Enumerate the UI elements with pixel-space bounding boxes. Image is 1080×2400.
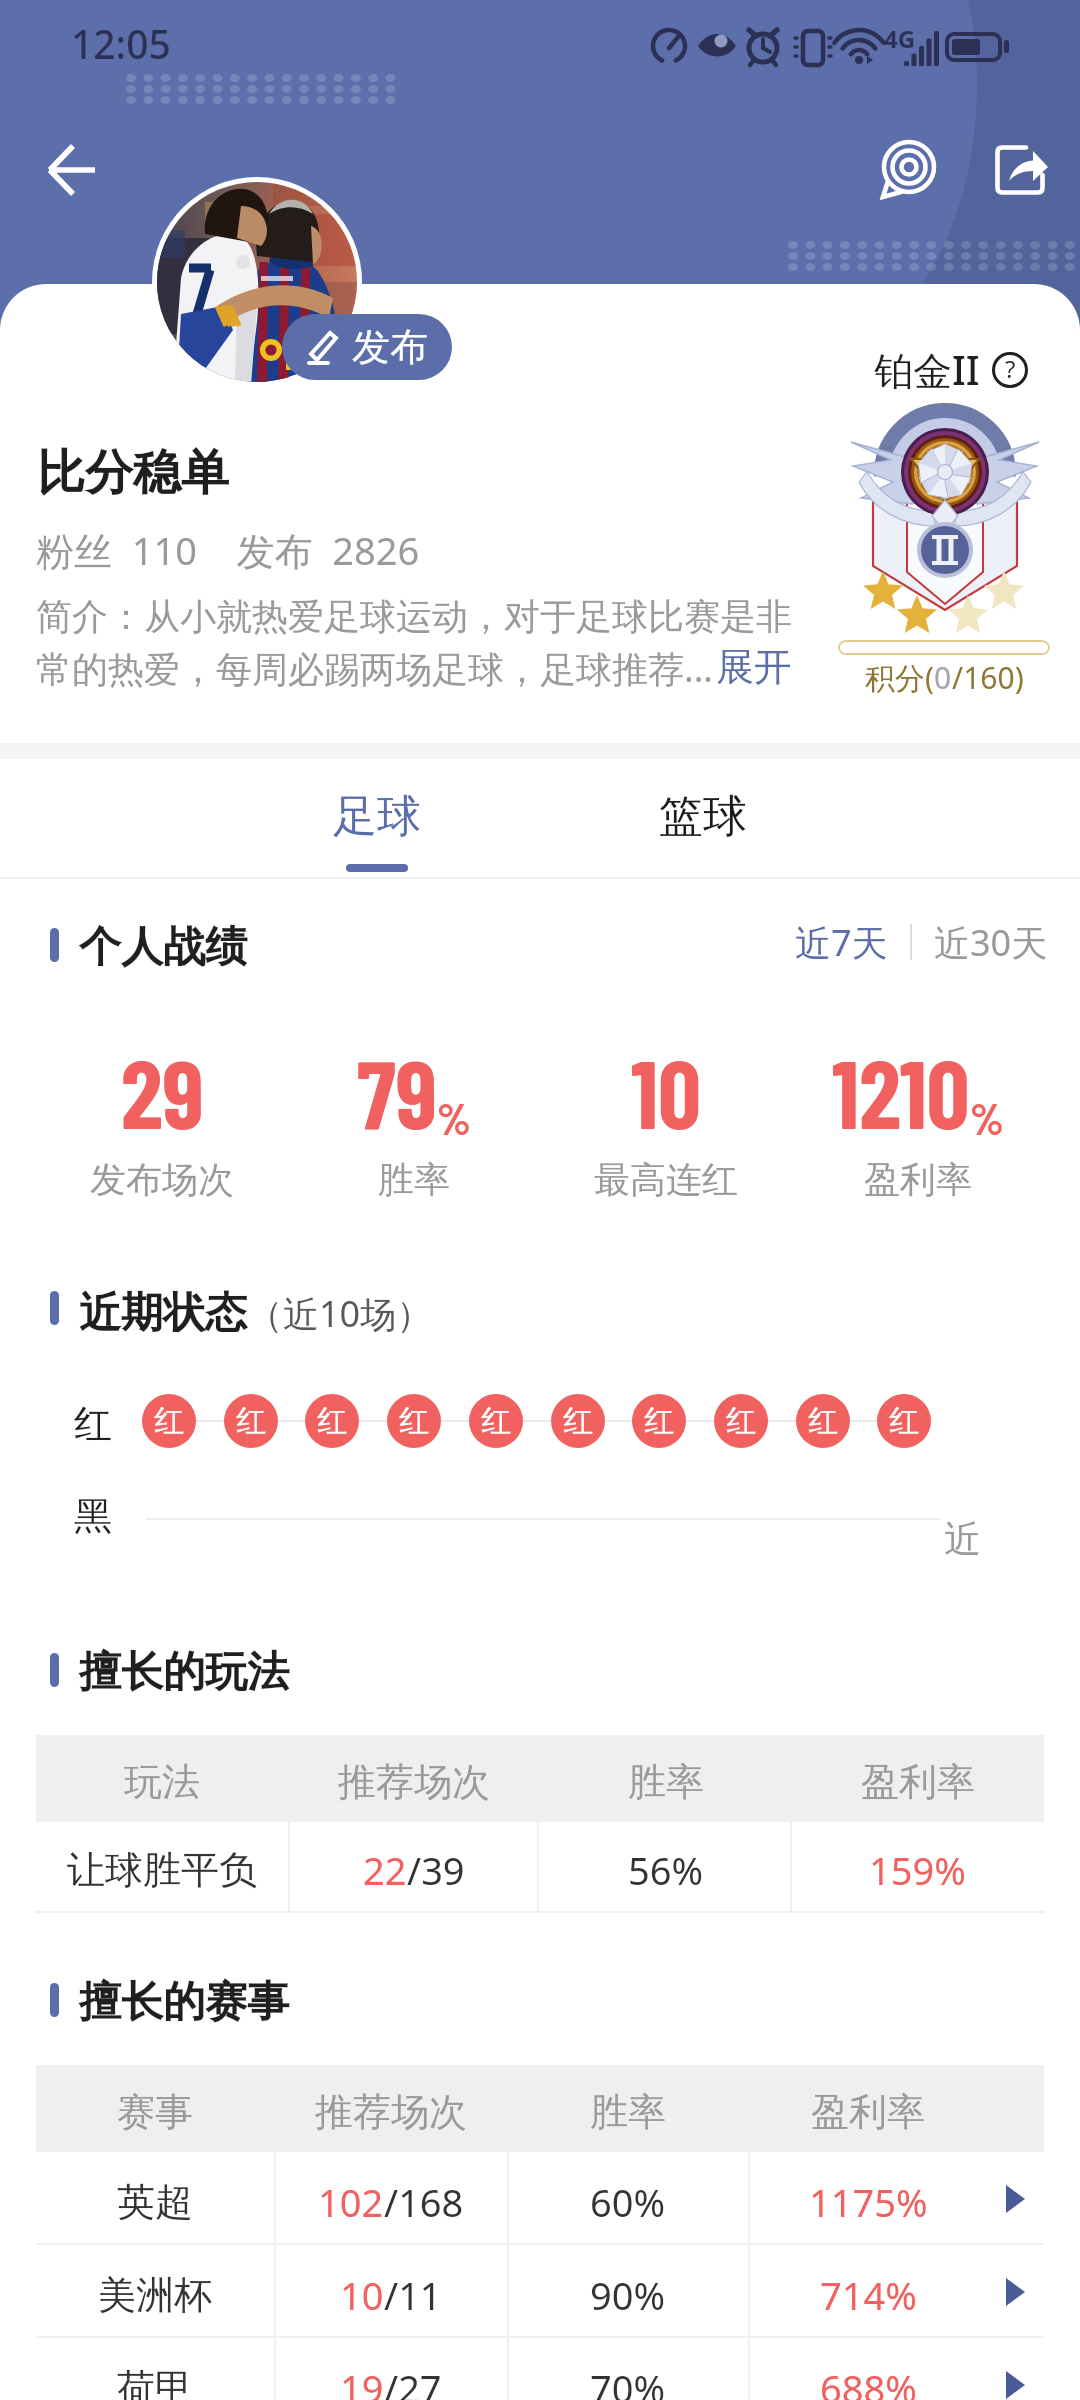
- staticText: 70%: [590, 2362, 666, 2400]
- staticText: 红: [726, 1402, 756, 1440]
- button[interactable]: 近30天: [934, 918, 1048, 966]
- staticText: 英超: [117, 2178, 193, 2226]
- staticText: 足球: [333, 789, 421, 844]
- staticText: %: [437, 1091, 471, 1144]
- staticText: 盈利率: [811, 2088, 925, 2136]
- staticText: ?: [1005, 352, 1016, 385]
- staticText: /11: [384, 2269, 442, 2321]
- staticText: 常的热爱，每周必踢两场足球，足球推荐...: [36, 644, 713, 693]
- button[interactable]: Share: [972, 122, 1068, 218]
- staticText: 个人战绩: [79, 921, 247, 974]
- staticText: 56%: [628, 1844, 704, 1896]
- staticText: 红: [481, 1402, 511, 1440]
- staticText: 胜率: [590, 2088, 666, 2136]
- staticText: 22: [363, 1844, 407, 1896]
- staticText: 红: [154, 1402, 184, 1440]
- staticText: 让球胜平负: [67, 1846, 257, 1894]
- staticText: 10: [340, 2269, 384, 2321]
- staticText: 近期状态: [79, 1287, 247, 1340]
- staticText: 发布: [352, 323, 428, 371]
- staticText: 159%: [869, 1844, 966, 1896]
- staticText: 盈利率: [864, 1157, 972, 1202]
- staticText: /27: [384, 2362, 442, 2400]
- staticText: 19: [340, 2362, 384, 2400]
- button[interactable]: 展开: [716, 643, 792, 691]
- staticText: /39: [407, 1844, 465, 1896]
- staticText: 盈利率: [861, 1758, 975, 1806]
- staticText: 60%: [590, 2176, 666, 2228]
- staticText: 0: [934, 657, 952, 698]
- staticText: 红: [808, 1402, 838, 1440]
- staticText: 79: [357, 1034, 437, 1148]
- staticText: 红: [399, 1402, 429, 1440]
- button[interactable]: 发布: [282, 314, 452, 380]
- staticText: /168: [384, 2176, 464, 2228]
- staticText: 红: [644, 1402, 674, 1440]
- staticText: 4G: [884, 22, 916, 55]
- staticText: 玩法: [124, 1758, 200, 1806]
- staticText: 90%: [590, 2269, 666, 2321]
- staticText: 粉丝 110 发布 2826: [36, 524, 420, 576]
- staticText: 推荐场次: [315, 2088, 467, 2136]
- staticText: 美洲杯: [98, 2271, 212, 2319]
- staticText: 714%: [820, 2269, 917, 2321]
- staticText: 10: [631, 1034, 702, 1148]
- staticText: 1175%: [809, 2176, 928, 2228]
- staticText: 688%: [820, 2362, 917, 2400]
- button[interactable]: Rank help: [991, 351, 1029, 389]
- staticText: %: [970, 1091, 1004, 1144]
- button[interactable]: 近7天: [795, 918, 888, 966]
- staticText: /160): [952, 657, 1024, 698]
- staticText: 1210: [832, 1034, 970, 1148]
- staticText: 29: [121, 1034, 204, 1148]
- staticText: 擅长的玩法: [79, 1646, 289, 1699]
- button[interactable]: Message: [862, 122, 958, 218]
- staticText: 红: [563, 1402, 593, 1440]
- staticText: 赛事: [117, 2088, 193, 2136]
- staticText: 荷甲: [117, 2364, 193, 2400]
- staticText: 擅长的赛事: [79, 1976, 289, 2029]
- button[interactable]: 足球: [285, 759, 469, 877]
- staticText: 积分(: [865, 657, 934, 698]
- staticText: 胜率: [628, 1758, 704, 1806]
- staticText: 篮球: [659, 789, 747, 844]
- button[interactable]: 荷甲: [36, 2338, 1044, 2400]
- staticText: 最高连红: [594, 1157, 738, 1202]
- staticText: 铂金II: [874, 343, 980, 396]
- staticText: 胜率: [378, 1157, 450, 1202]
- staticText: 102: [318, 2176, 384, 2228]
- staticText: 红: [236, 1402, 266, 1440]
- staticText: 简介：从小就热爱足球运动，对于足球比赛是非: [36, 594, 792, 639]
- staticText: 近: [944, 1516, 981, 1563]
- button[interactable]: 篮球: [611, 759, 795, 877]
- staticText: 推荐场次: [338, 1758, 490, 1806]
- staticText: （近10场）: [247, 1289, 433, 1338]
- staticText: 发布场次: [90, 1157, 234, 1202]
- button[interactable]: Back: [26, 126, 118, 216]
- button[interactable]: 英超: [36, 2152, 1044, 2245]
- button[interactable]: 美洲杯: [36, 2245, 1044, 2338]
- staticText: 红: [889, 1402, 919, 1440]
- staticText: 红: [74, 1400, 112, 1448]
- staticText: 比分稳单: [37, 443, 229, 503]
- staticText: 12:05: [71, 17, 171, 70]
- staticText: 黑: [74, 1492, 112, 1540]
- staticText: 红: [317, 1402, 347, 1440]
